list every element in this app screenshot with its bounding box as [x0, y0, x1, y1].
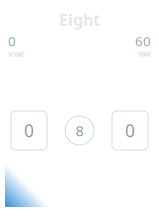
staticText: 60: [135, 32, 151, 50]
button[interactable]: 8: [65, 116, 94, 145]
button[interactable]: 0: [11, 111, 47, 150]
staticText: 0: [24, 119, 34, 142]
staticText: 0: [8, 32, 16, 50]
staticText: 8: [75, 121, 83, 140]
staticText: SCORE: [8, 51, 24, 58]
staticText: Eight: [59, 9, 100, 30]
button[interactable]: 0: [112, 111, 148, 150]
staticText: 0: [125, 119, 135, 142]
staticText: TIME: [138, 51, 151, 58]
